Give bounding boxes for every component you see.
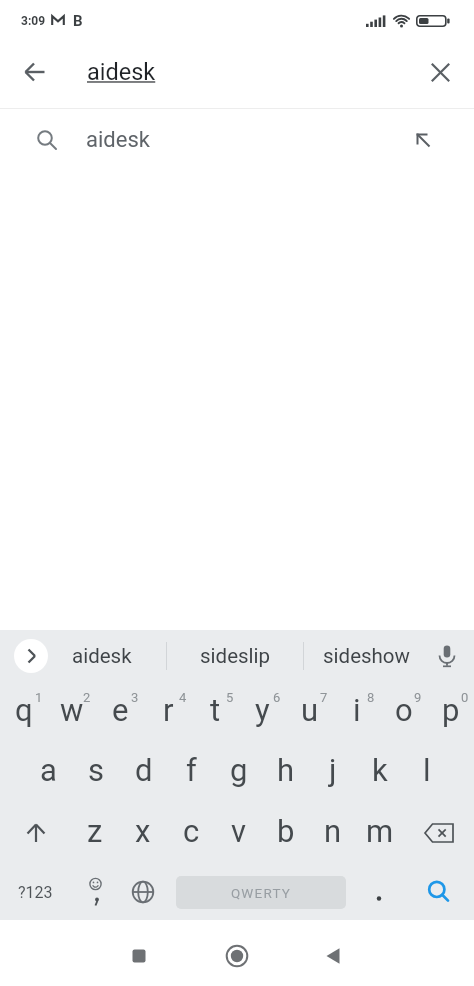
staticText: 5: [226, 690, 234, 705]
button[interactable]: [313, 936, 353, 976]
button[interactable]: f: [168, 742, 215, 802]
staticText: q: [15, 692, 33, 728]
staticText: l: [423, 752, 431, 788]
button[interactable]: [403, 802, 474, 864]
button[interactable]: [14, 639, 48, 673]
button[interactable]: h: [262, 742, 309, 802]
button[interactable]: n: [309, 802, 356, 864]
staticText: z: [87, 813, 103, 849]
staticText: b: [277, 813, 295, 849]
staticText: 6: [273, 690, 281, 705]
staticText: 7: [320, 690, 328, 705]
button[interactable]: QWERTY: [167, 864, 355, 920]
button[interactable]: [420, 52, 460, 92]
button[interactable]: k: [356, 742, 403, 802]
button[interactable]: [217, 936, 257, 976]
staticText: n: [324, 813, 342, 849]
button[interactable]: t: [192, 682, 239, 742]
staticText: i: [353, 692, 361, 728]
button[interactable]: ?123: [0, 864, 71, 920]
button[interactable]: i: [333, 682, 380, 742]
staticText: 2: [83, 690, 91, 705]
button[interactable]: x: [119, 802, 167, 864]
staticText: B: [73, 12, 83, 30]
staticText: 3:09: [21, 14, 46, 28]
button[interactable]: b: [262, 802, 309, 864]
staticText: 8: [367, 690, 375, 705]
staticText: aidesk: [87, 58, 156, 86]
staticText: t: [210, 692, 221, 728]
staticText: j: [329, 752, 337, 788]
button[interactable]: l: [403, 742, 450, 802]
staticText: e: [112, 692, 129, 728]
button[interactable]: [355, 864, 403, 920]
staticText: QWERTY: [231, 885, 292, 901]
button[interactable]: aidesk: [0, 109, 474, 171]
button[interactable]: [119, 864, 167, 920]
button[interactable]: v: [215, 802, 262, 864]
staticText: 0: [461, 690, 469, 705]
staticText: h: [277, 752, 295, 788]
staticText: 9: [414, 690, 422, 705]
button[interactable]: o: [380, 682, 427, 742]
staticText: r: [163, 692, 174, 728]
staticText: 1: [35, 690, 43, 705]
button[interactable]: w: [48, 682, 96, 742]
staticText: o: [395, 692, 413, 728]
staticText: s: [88, 752, 104, 788]
staticText: ?123: [18, 883, 53, 902]
button[interactable]: m: [356, 802, 403, 864]
button[interactable]: e: [96, 682, 144, 742]
staticText: m: [366, 813, 394, 849]
staticText: sideslip: [200, 644, 271, 668]
staticText: sideshow: [323, 644, 410, 668]
button[interactable]: j: [309, 742, 356, 802]
staticText: 3: [131, 690, 139, 705]
staticText: g: [230, 752, 248, 788]
button[interactable]: a: [24, 742, 72, 802]
button[interactable]: c: [167, 802, 215, 864]
staticText: 4: [179, 690, 187, 705]
staticText: aidesk: [86, 127, 150, 153]
staticText: p: [442, 692, 460, 728]
staticText: w: [60, 692, 84, 728]
button[interactable]: [435, 644, 459, 668]
staticText: u: [301, 692, 319, 728]
button[interactable]: d: [120, 742, 168, 802]
staticText: a: [40, 752, 57, 788]
staticText: f: [186, 752, 197, 788]
button[interactable]: [119, 936, 159, 976]
button[interactable]: y: [239, 682, 286, 742]
button[interactable]: sideslip: [167, 630, 303, 682]
button[interactable]: [71, 864, 119, 920]
button[interactable]: q: [0, 682, 48, 742]
staticText: c: [183, 813, 200, 849]
button[interactable]: z: [71, 802, 119, 864]
staticText: y: [255, 692, 270, 728]
button[interactable]: u: [286, 682, 333, 742]
staticText: x: [135, 813, 151, 849]
staticText: d: [135, 752, 153, 788]
button[interactable]: p: [427, 682, 474, 742]
button[interactable]: sideshow: [304, 630, 428, 682]
button[interactable]: g: [215, 742, 262, 802]
staticText: v: [231, 813, 247, 849]
staticText: k: [372, 752, 388, 788]
button[interactable]: aidesk: [38, 630, 166, 682]
button[interactable]: s: [72, 742, 120, 802]
button[interactable]: [0, 802, 71, 864]
button[interactable]: r: [144, 682, 192, 742]
staticText: aidesk: [72, 644, 132, 668]
button[interactable]: [403, 864, 474, 920]
button[interactable]: [15, 52, 55, 92]
